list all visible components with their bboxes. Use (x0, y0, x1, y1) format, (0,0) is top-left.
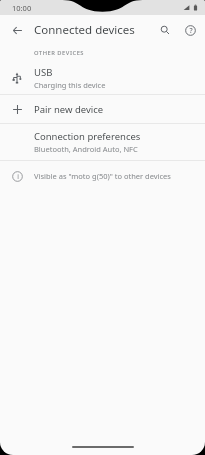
button[interactable]: Pair new device (0, 95, 205, 123)
staticText: ? (189, 26, 193, 36)
staticText: Visible as "moto g(50)" to other devices (34, 171, 171, 181)
staticText: i (17, 172, 19, 181)
staticText: Connected devices (34, 22, 135, 38)
staticText: OTHER DEVICES (34, 49, 85, 57)
staticText: Connection preferences (34, 130, 141, 143)
button[interactable]: USB (0, 61, 205, 94)
button[interactable]: Connection preferences (0, 124, 205, 160)
staticText: Pair new device (34, 103, 104, 116)
staticText: 10:00 (12, 3, 32, 13)
staticText: Charging this device (34, 80, 106, 90)
staticText: Bluetooth, Android Auto, NFC (34, 144, 138, 154)
button[interactable]: Search (154, 19, 176, 41)
button[interactable]: Back (6, 19, 28, 41)
staticText: USB (34, 66, 53, 79)
button[interactable]: Help (179, 19, 201, 41)
